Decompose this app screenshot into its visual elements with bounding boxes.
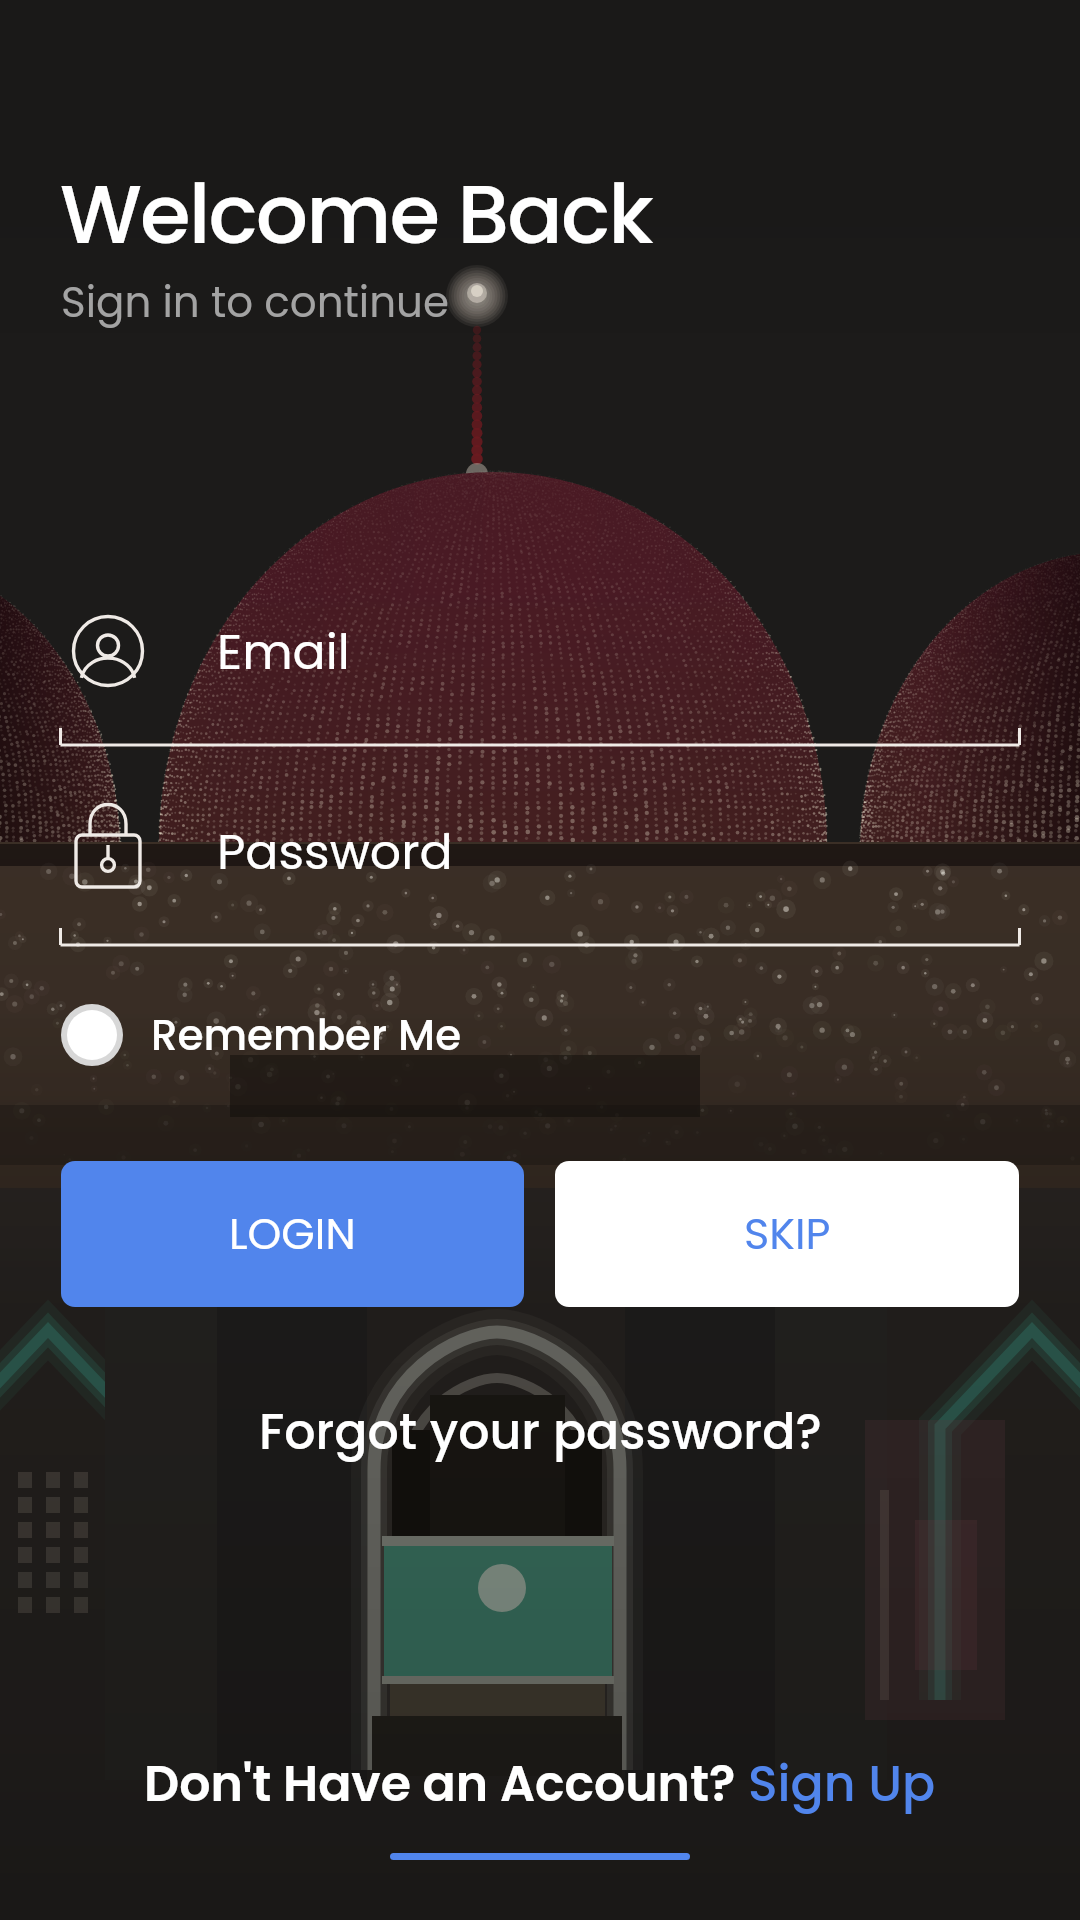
button[interactable]: SKIP [555,1161,1019,1307]
staticText: Forgot your password? [259,1398,822,1467]
button[interactable]: LOGIN [61,1161,524,1307]
staticText: Email [217,618,350,687]
staticText: Welcome Back [60,157,652,272]
button[interactable]: Forgot your password? [235,1392,846,1473]
button[interactable]: Sign Up [748,1750,936,1819]
button[interactable]: Password [60,797,1019,947]
staticText: SKIP [744,1204,831,1264]
staticText: LOGIN [229,1204,356,1264]
staticText: Sign Up [748,1750,936,1819]
staticText: Don't Have an Account? [144,1750,748,1819]
staticText: Password [217,818,453,887]
staticText: Sign in to continue [61,273,449,332]
button[interactable]: Email [60,597,1019,747]
staticText: Remember Me [151,1006,462,1065]
button[interactable]: Remember Me [61,1004,478,1066]
